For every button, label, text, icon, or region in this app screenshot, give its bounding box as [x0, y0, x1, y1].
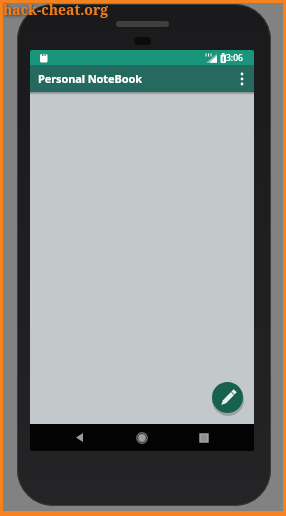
button[interactable] [235, 69, 249, 89]
button[interactable] [122, 424, 162, 451]
staticText: hack-cheat.org [3, 0, 109, 19]
button[interactable] [60, 424, 100, 451]
button[interactable] [184, 424, 224, 451]
staticText: Personal NoteBook [38, 71, 142, 86]
staticText: 3:06 [226, 52, 243, 64]
button[interactable] [212, 382, 243, 413]
